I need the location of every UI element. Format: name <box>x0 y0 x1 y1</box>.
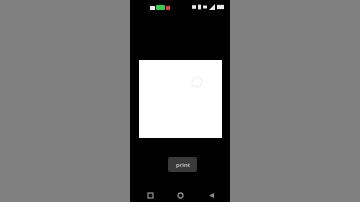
staticText: print <box>176 161 190 169</box>
button[interactable]: print <box>168 157 197 172</box>
button[interactable]: Back <box>200 189 222 202</box>
button[interactable]: Recents <box>139 189 161 202</box>
button[interactable]: Home <box>169 189 191 202</box>
